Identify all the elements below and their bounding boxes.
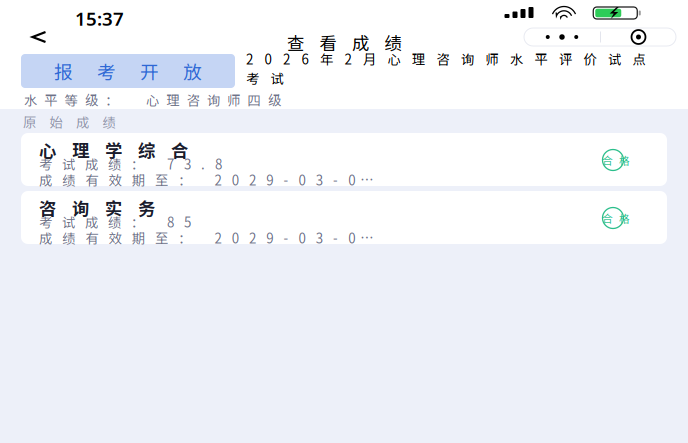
staticText: 心理学综合 [39,137,188,162]
staticText: 考试成绩： 85 [39,212,191,231]
staticText: 合格 [602,210,630,226]
staticText: 查看成绩 [287,30,401,55]
staticText: 报考开放 [54,57,202,84]
button[interactable]: 咨询实务 [21,191,667,244]
staticText: 成绩有效期至： 2029-03-05 [39,228,372,247]
button[interactable]: Close mini program [601,28,676,46]
staticText: 咨询实务 [39,195,155,220]
staticText: 成绩有效期至： 2029-03-05 [39,170,372,189]
staticText: 合格 [602,152,630,168]
staticText: 2026年2月心理咨询师水平评价试点考试 [246,49,645,88]
staticText: 考试成绩： 73.8 [39,154,222,173]
button[interactable]: Back [24,27,54,47]
staticText: 原始成绩 [23,112,115,131]
staticText: 水平等级： 心理咨询师四级 [24,90,281,109]
staticText: 15:37 [75,6,124,31]
button[interactable]: More [524,28,600,46]
button[interactable]: 心理学综合 [21,133,667,186]
